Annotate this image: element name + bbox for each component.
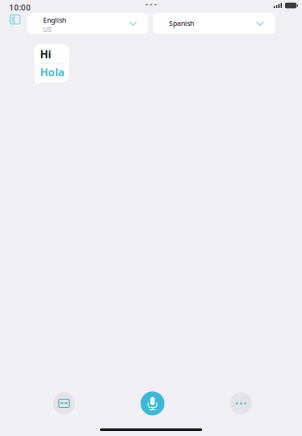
button[interactable]: English — [27, 13, 148, 34]
button[interactable]: Keyboard — [53, 392, 75, 414]
button[interactable]: Spanish — [153, 13, 275, 34]
staticText: Spanish — [169, 19, 194, 28]
staticText: Hi — [40, 47, 51, 61]
staticText: English — [43, 16, 66, 24]
staticText: Hola — [40, 65, 64, 79]
button[interactable]: Show sidebar — [10, 13, 27, 34]
staticText: US — [43, 25, 52, 34]
button[interactable]: More options — [230, 392, 252, 414]
staticText: 10:00 — [9, 2, 31, 13]
button[interactable]: Microphone — [140, 391, 164, 415]
